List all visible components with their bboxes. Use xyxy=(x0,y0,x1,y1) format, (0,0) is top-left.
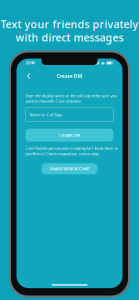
button[interactable]: Back xyxy=(25,71,32,80)
staticText: Create DM xyxy=(56,72,82,80)
staticText: CREATE DM xyxy=(58,132,80,138)
staticText: SHARE MORSE CHAT xyxy=(50,166,89,171)
staticText: Text your friends privately xyxy=(0,17,138,31)
staticText: Can't find the person you're looking for… xyxy=(25,146,117,156)
button[interactable]: SHARE MORSE CHAT xyxy=(41,163,97,174)
staticText: 22:08 xyxy=(25,60,34,65)
button[interactable]: CREATE DM xyxy=(25,129,113,142)
staticText: with direct messages xyxy=(15,30,123,44)
staticText: Name or Call Sign xyxy=(29,112,61,117)
staticText: Enter the display name or the call sign … xyxy=(25,93,116,104)
